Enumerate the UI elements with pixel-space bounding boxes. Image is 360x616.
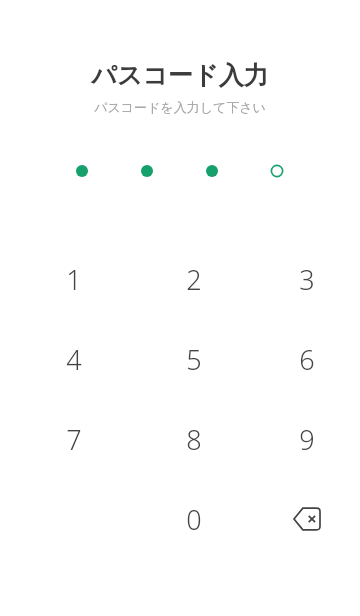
staticText: 4 <box>66 341 82 378</box>
button[interactable]: 3 <box>271 243 343 315</box>
staticText: 9 <box>299 421 315 458</box>
staticText: 6 <box>299 341 315 378</box>
staticText: 5 <box>186 341 202 378</box>
button[interactable]: 9 <box>271 403 343 475</box>
button[interactable]: 2 <box>158 243 230 315</box>
staticText: 3 <box>299 261 315 298</box>
staticText: 2 <box>186 261 202 298</box>
staticText: 0 <box>186 501 202 538</box>
staticText: 7 <box>66 421 82 458</box>
staticText: 1 <box>66 261 82 298</box>
button[interactable]: 6 <box>271 323 343 395</box>
button[interactable]: 0 <box>158 483 230 555</box>
button[interactable]: 4 <box>38 323 110 395</box>
button[interactable]: 7 <box>38 403 110 475</box>
staticText: パスコード入力 <box>0 60 360 91</box>
button[interactable]: 1 <box>38 243 110 315</box>
button[interactable]: 5 <box>158 323 230 395</box>
staticText: パスコードを入力して下さい <box>0 99 360 115</box>
staticText: 8 <box>186 421 202 458</box>
button[interactable]: Backspace <box>271 483 343 555</box>
button[interactable]: 8 <box>158 403 230 475</box>
